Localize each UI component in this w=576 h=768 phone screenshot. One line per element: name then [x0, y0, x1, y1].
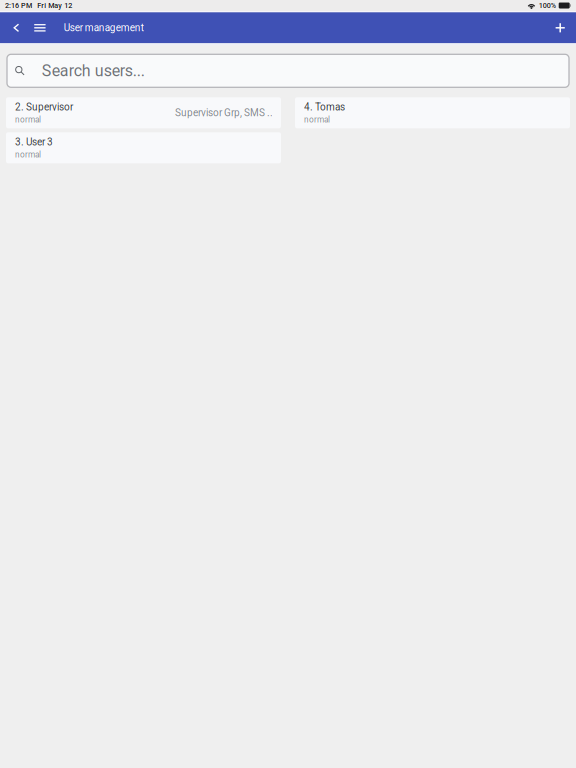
- button[interactable]: Menu: [27, 12, 53, 43]
- staticText: 2:16 PM: [5, 1, 32, 10]
- button[interactable]: 2. Supervisor: [6, 97, 281, 128]
- staticText: 2. Supervisor: [15, 101, 73, 113]
- button[interactable]: Back: [6, 12, 27, 43]
- staticText: normal: [15, 115, 41, 124]
- button[interactable]: Add user: [548, 12, 572, 43]
- staticText: 4. Tomas: [304, 101, 345, 113]
- staticText: normal: [15, 150, 41, 159]
- staticText: normal: [304, 115, 330, 124]
- button[interactable]: 3. User 3: [6, 132, 281, 163]
- staticText: Fri May 12: [37, 1, 72, 10]
- staticText: 3. User 3: [15, 136, 53, 148]
- staticText: User management: [64, 22, 144, 34]
- button[interactable]: Search users...: [7, 54, 569, 87]
- staticText: Supervisor Grp, SMS ..: [175, 107, 273, 119]
- staticText: Search users...: [42, 61, 145, 80]
- button[interactable]: 4. Tomas: [295, 97, 570, 128]
- staticText: 100%: [539, 1, 556, 10]
